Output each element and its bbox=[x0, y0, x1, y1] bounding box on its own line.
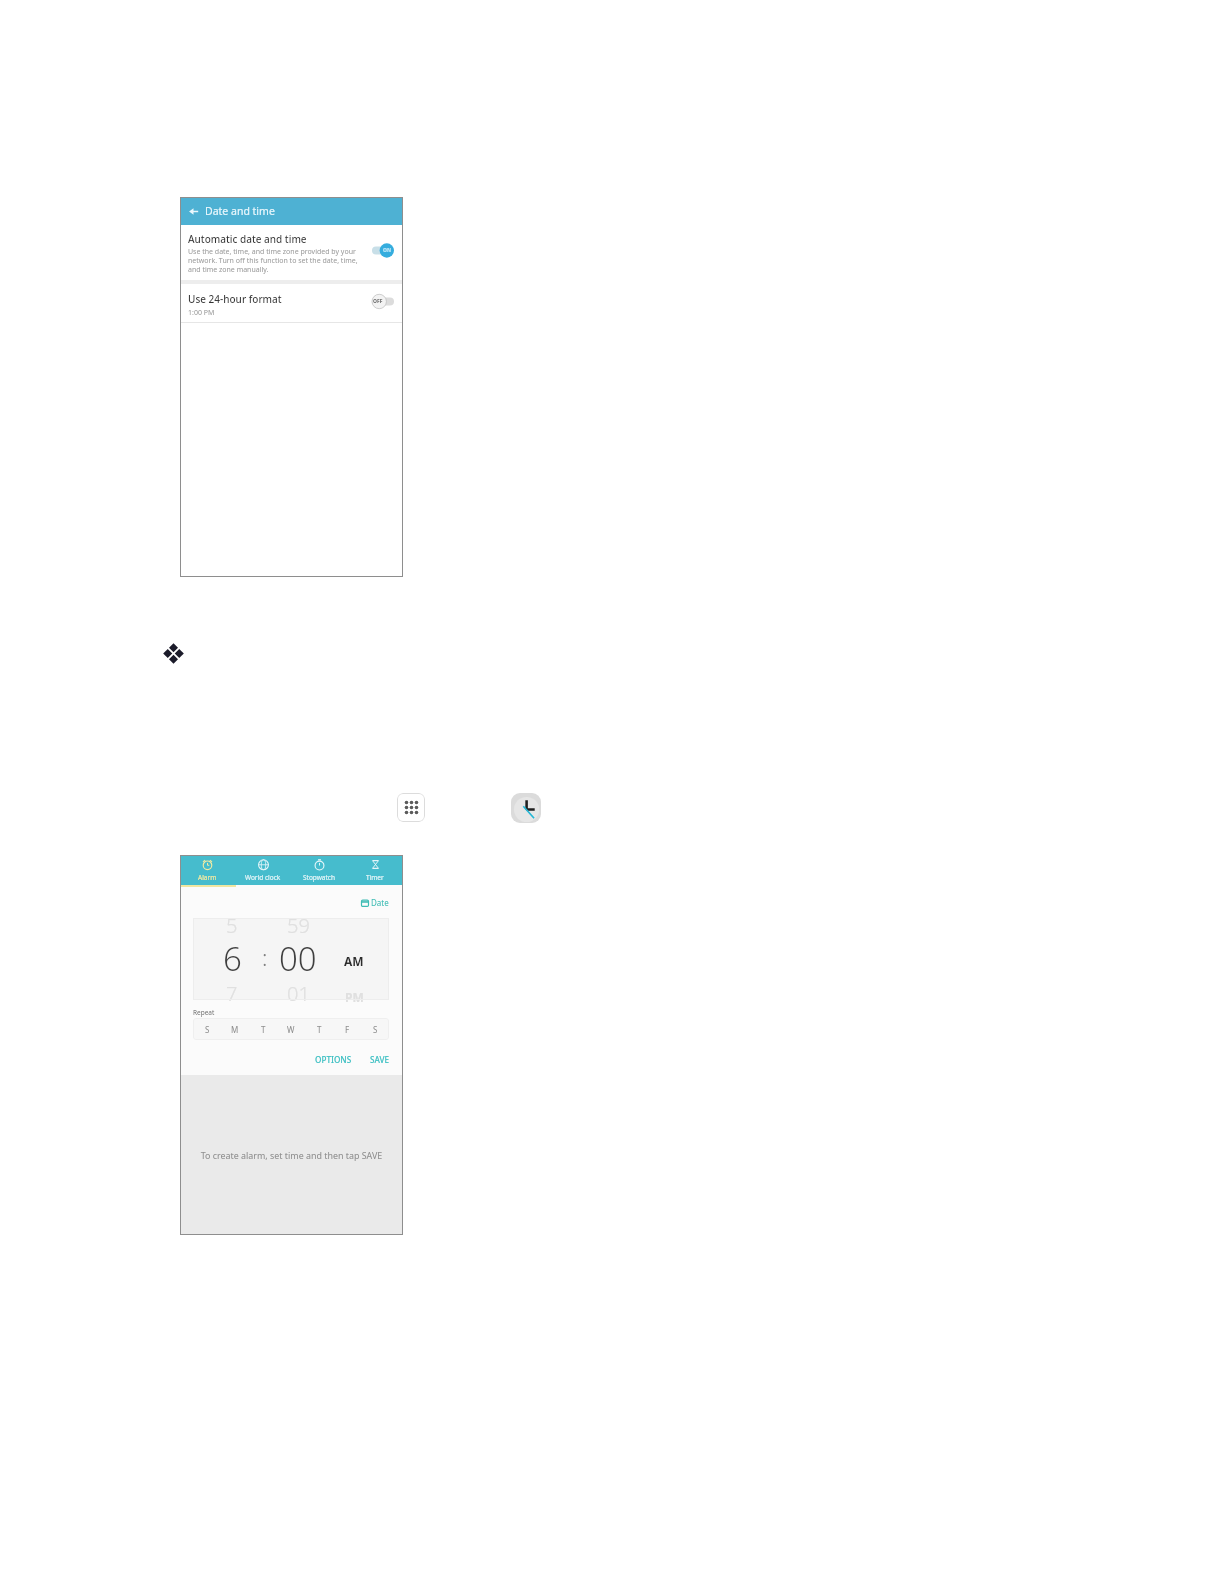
button[interactable]: OPTIONS bbox=[312, 1052, 355, 1067]
staticText: Timer bbox=[366, 873, 384, 882]
staticText: W bbox=[287, 1024, 295, 1035]
staticText: T bbox=[261, 1024, 266, 1035]
staticText: PM bbox=[345, 989, 364, 1005]
staticText: S bbox=[205, 1024, 210, 1035]
button[interactable]: Stopwatch bbox=[291, 855, 347, 885]
staticText: SAVE bbox=[370, 1054, 390, 1065]
staticText: 00 bbox=[279, 936, 317, 978]
staticText: S bbox=[373, 1024, 378, 1035]
button[interactable]: Clock bbox=[511, 793, 541, 823]
staticText: OPTIONS bbox=[315, 1054, 352, 1065]
staticText: M bbox=[231, 1024, 239, 1035]
button[interactable]: T bbox=[249, 1018, 277, 1040]
staticText: AM bbox=[344, 953, 364, 969]
staticText: 6 bbox=[223, 936, 242, 978]
button[interactable]: Navigate up bbox=[180, 197, 403, 225]
staticText: ON bbox=[383, 247, 392, 254]
staticText: 7 bbox=[226, 980, 238, 1006]
staticText: : bbox=[262, 942, 268, 972]
staticText: 1:00 PM bbox=[188, 308, 215, 318]
staticText: Automatic date and time bbox=[188, 232, 307, 246]
staticText: OFF bbox=[373, 298, 383, 305]
staticText: T bbox=[317, 1024, 322, 1035]
staticText: Date bbox=[371, 897, 389, 908]
button[interactable]: Apps bbox=[397, 793, 425, 822]
staticText: 01 bbox=[287, 980, 310, 1006]
button[interactable]: S bbox=[361, 1018, 389, 1040]
staticText: Date and time bbox=[205, 204, 275, 218]
button[interactable]: W bbox=[277, 1018, 305, 1040]
button[interactable]: T bbox=[305, 1018, 333, 1040]
button[interactable]: Automatic date and time bbox=[180, 225, 403, 280]
staticText: Use 24-hour format bbox=[188, 292, 282, 306]
button[interactable]: 5 bbox=[193, 918, 389, 1000]
staticText: Alarm bbox=[198, 873, 217, 882]
button[interactable]: S bbox=[193, 1018, 221, 1040]
staticText: 59 bbox=[287, 912, 310, 938]
staticText: F bbox=[345, 1024, 350, 1035]
button[interactable]: F bbox=[333, 1018, 361, 1040]
button[interactable]: Use 24-hour format bbox=[180, 284, 403, 322]
staticText: 5 bbox=[226, 912, 238, 938]
button[interactable]: Date bbox=[361, 897, 389, 908]
button[interactable]: SAVE bbox=[367, 1052, 393, 1067]
button[interactable]: World clock bbox=[235, 855, 291, 885]
staticText: Stopwatch bbox=[303, 873, 335, 882]
other: Navigate up bbox=[187, 205, 200, 218]
button[interactable]: M bbox=[221, 1018, 249, 1040]
button[interactable]: OFF bbox=[372, 294, 394, 309]
staticText: Use the date, time, and time zone provid… bbox=[188, 247, 360, 274]
button[interactable]: ON bbox=[372, 243, 394, 258]
button[interactable]: Timer bbox=[347, 855, 403, 885]
staticText: Repeat bbox=[193, 1008, 215, 1017]
button[interactable]: Alarm bbox=[180, 855, 235, 885]
staticText: To create alarm, set time and then tap S… bbox=[186, 1149, 397, 1161]
staticText: World clock bbox=[245, 873, 281, 882]
